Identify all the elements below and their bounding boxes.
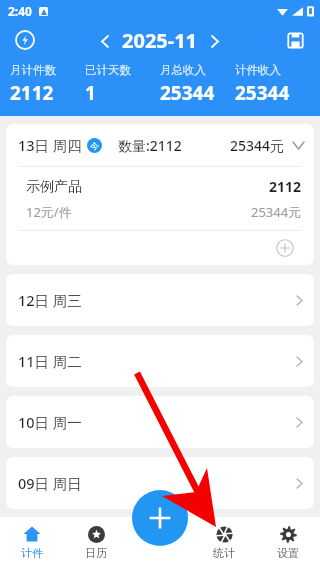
- button[interactable]: Save: [280, 25, 310, 55]
- staticText: 2:40: [8, 3, 32, 19]
- staticText: 10日 周一: [18, 412, 82, 432]
- staticText: 1: [85, 80, 96, 106]
- staticText: 计件: [21, 546, 43, 560]
- staticText: 已计天数: [85, 63, 131, 77]
- button[interactable]: 计件: [0, 517, 64, 568]
- button[interactable]: Next month: [202, 28, 228, 54]
- staticText: 25344元: [251, 203, 302, 221]
- staticText: 11日 周二: [18, 351, 82, 371]
- staticText: 计件收入: [235, 63, 281, 77]
- button[interactable]: 13日 周四: [6, 124, 314, 166]
- button[interactable]: Quick entry: [10, 25, 40, 55]
- staticText: 2112: [10, 80, 54, 106]
- button[interactable]: 统计: [192, 517, 256, 568]
- staticText: 12元/件: [26, 203, 72, 221]
- staticText: 统计: [213, 546, 235, 560]
- button[interactable]: Add item: [274, 237, 296, 259]
- button[interactable]: Previous month: [92, 28, 118, 54]
- staticText: 12日 周三: [18, 290, 82, 310]
- button[interactable]: 09日 周日: [6, 457, 314, 509]
- staticText: 2025-11: [122, 27, 198, 54]
- staticText: 数量:2112: [118, 136, 182, 155]
- staticText: 2112: [269, 177, 302, 196]
- staticText: 13日 周四: [18, 135, 82, 155]
- staticText: 日历: [85, 546, 107, 560]
- staticText: 设置: [277, 546, 299, 560]
- button[interactable]: 10日 周一: [6, 396, 314, 448]
- staticText: 25344元: [230, 136, 285, 155]
- staticText: 25344: [235, 80, 290, 106]
- staticText: 月计件数: [10, 63, 56, 77]
- button[interactable]: 设置: [256, 517, 320, 568]
- staticText: 今: [90, 140, 99, 151]
- staticText: 09日 周日: [18, 473, 82, 493]
- staticText: 25344: [160, 80, 215, 106]
- staticText: 月总收入: [160, 63, 206, 77]
- staticText: 示例产品: [26, 178, 82, 196]
- button[interactable]: 12日 周三: [6, 274, 314, 326]
- button[interactable]: Add: [132, 490, 188, 546]
- button[interactable]: 日历: [64, 517, 128, 568]
- button[interactable]: 11日 周二: [6, 335, 314, 387]
